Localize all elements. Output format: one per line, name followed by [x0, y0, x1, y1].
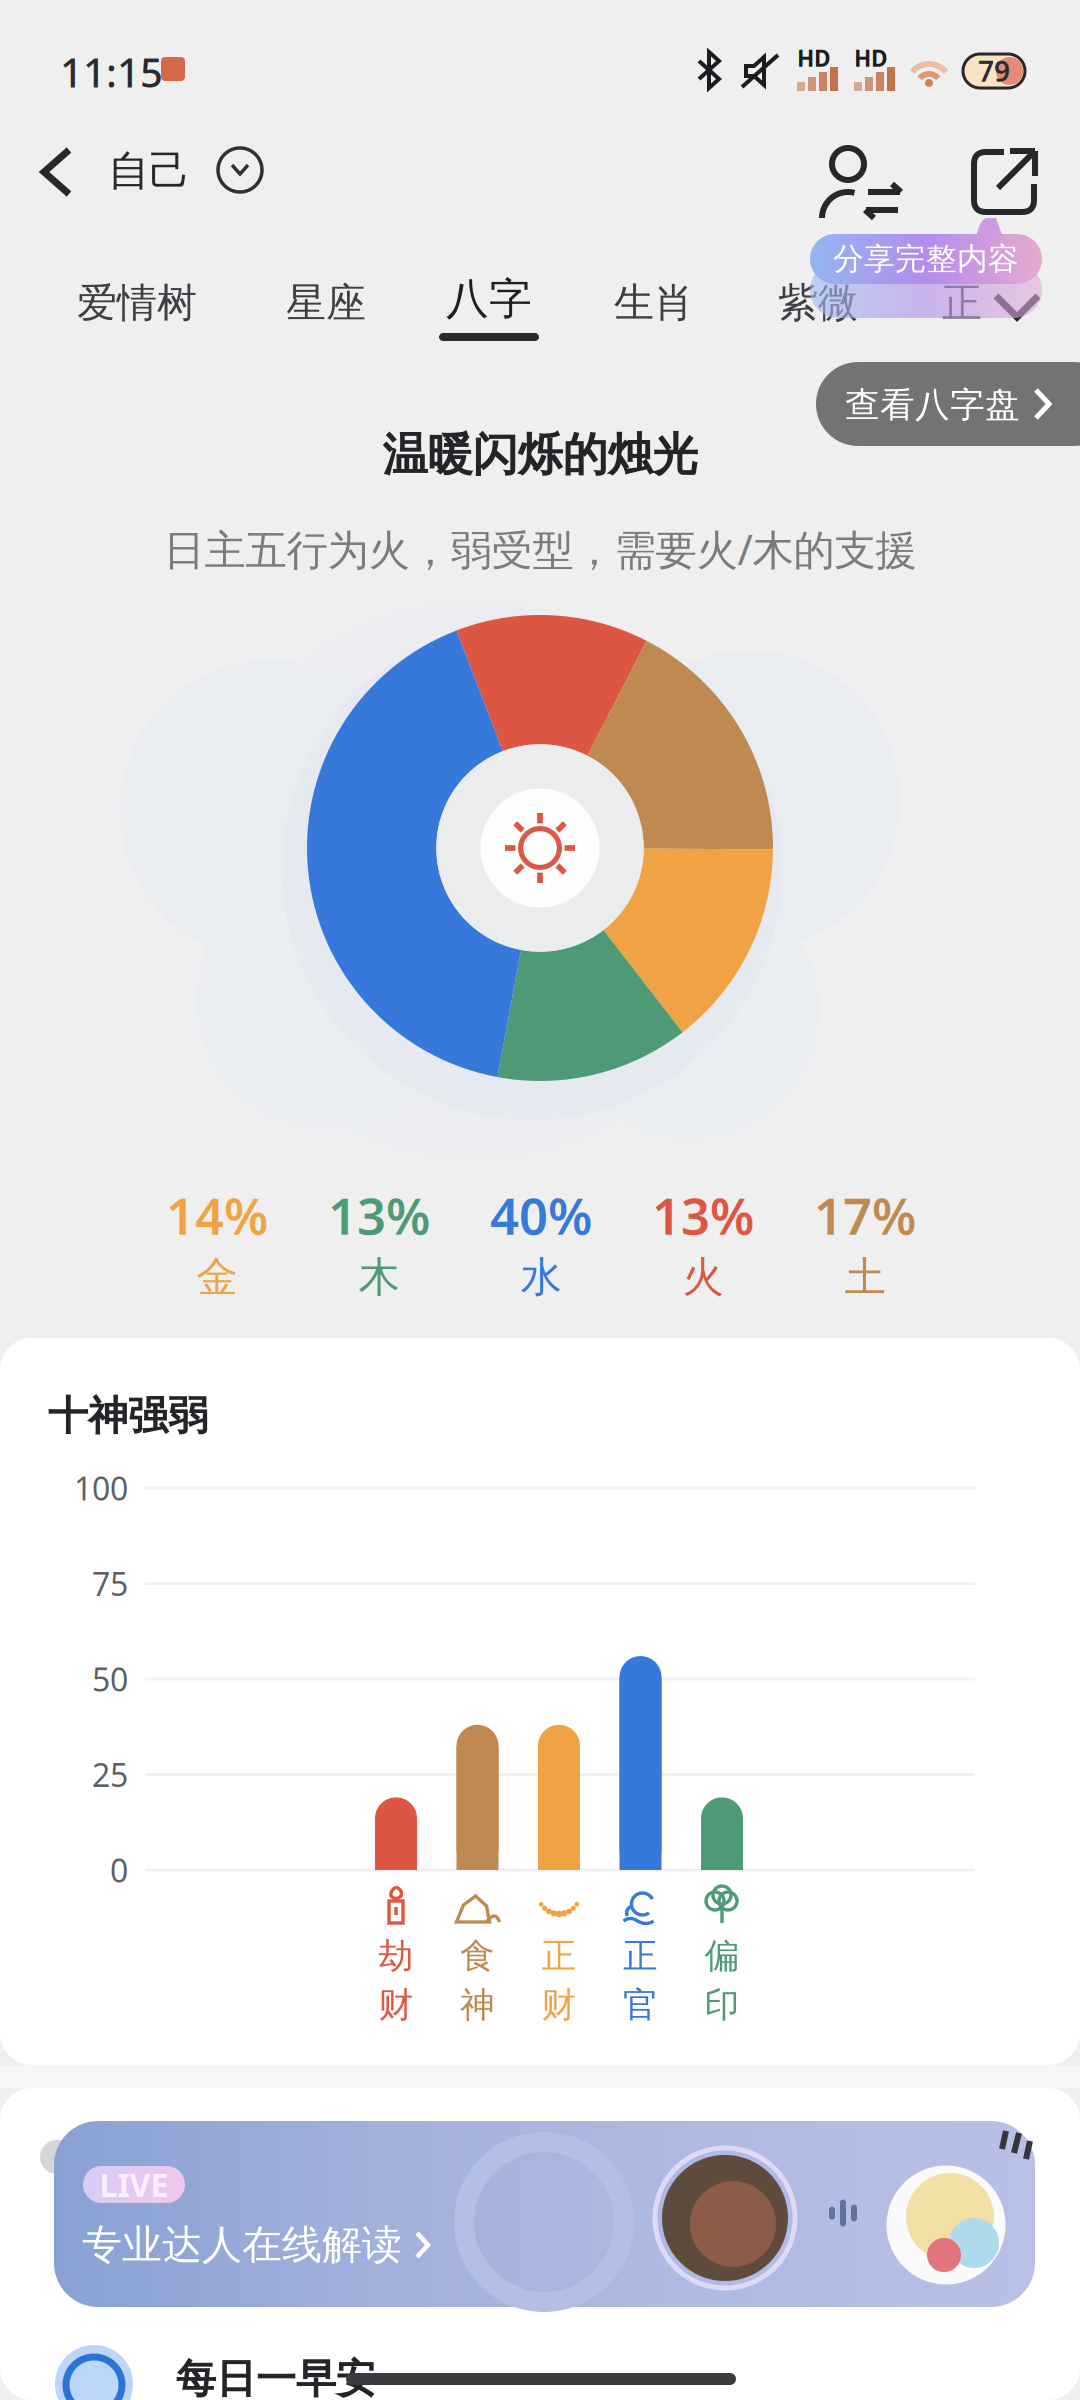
staticText: 100 — [74, 1467, 128, 1509]
staticText: 79 — [978, 52, 1010, 90]
staticText: 土 — [844, 1252, 885, 1303]
staticText: 火 — [682, 1252, 723, 1303]
staticText: 11:15 — [60, 45, 163, 98]
button[interactable]: 八字 — [389, 271, 589, 327]
staticText: 偏 — [704, 1935, 739, 1977]
staticText: 劫 — [378, 1935, 413, 1977]
staticText: 0 — [110, 1849, 128, 1891]
staticText: 财 — [541, 1984, 576, 2026]
staticText: 生肖 — [614, 278, 694, 327]
staticText: 神 — [460, 1984, 495, 2026]
button[interactable]: 紫微 — [718, 275, 918, 331]
staticText: 水 — [520, 1252, 561, 1303]
staticText: 40% — [490, 1181, 592, 1249]
button[interactable]: 生肖 — [554, 275, 754, 331]
button[interactable]: LIVE — [54, 2121, 1035, 2307]
button[interactable]: 正 — [862, 275, 1062, 331]
staticText: 自己 — [108, 146, 190, 196]
staticText: 木 — [358, 1252, 399, 1303]
staticText: 金 — [196, 1252, 237, 1303]
button[interactable]: More categories — [982, 274, 1052, 336]
staticText: 正 — [541, 1935, 576, 1977]
staticText: 印 — [704, 1984, 739, 2026]
staticText: 财 — [378, 1984, 413, 2026]
button[interactable]: Switch chart — [218, 148, 262, 192]
staticText: 14% — [166, 1181, 268, 1249]
staticText: 正 — [942, 278, 982, 327]
staticText: 17% — [814, 1181, 916, 1249]
staticText: 爱情树 — [77, 278, 197, 327]
staticText: 星座 — [286, 278, 366, 327]
button[interactable]: 查看八字盘 — [816, 362, 1080, 446]
staticText: 50 — [92, 1658, 128, 1700]
staticText: 十神强弱 — [48, 1391, 208, 1440]
staticText: 查看八字盘 — [845, 384, 1020, 426]
staticText: 分享完整内容 — [833, 240, 1019, 278]
staticText: 日主五行为火，弱受型，需要火/木的支援 — [163, 522, 916, 576]
staticText: 温暖闪烁的烛光 — [382, 427, 697, 483]
button[interactable]: Compare — [822, 142, 906, 226]
button[interactable]: 星座 — [226, 275, 426, 331]
staticText: 专业达人在线解读 — [82, 2220, 402, 2269]
staticText: HD — [797, 43, 831, 73]
staticText: HD — [854, 43, 888, 73]
staticText: 每日一早安 — [176, 2354, 376, 2400]
button[interactable]: Share — [964, 142, 1044, 222]
button[interactable]: Back — [20, 132, 100, 212]
staticText: LIVE — [99, 2163, 168, 2206]
staticText: 75 — [92, 1562, 128, 1605]
staticText: 13% — [652, 1181, 754, 1249]
staticText: 紫微 — [778, 278, 858, 327]
staticText: 八字 — [446, 273, 532, 325]
staticText: 官 — [623, 1984, 658, 2026]
staticText: 食 — [460, 1935, 495, 1977]
button[interactable]: 爱情树 — [37, 275, 237, 331]
staticText: 13% — [328, 1181, 430, 1249]
staticText: 正 — [623, 1935, 658, 1977]
button[interactable]: 自己 — [108, 146, 268, 196]
staticText: 25 — [92, 1753, 128, 1796]
